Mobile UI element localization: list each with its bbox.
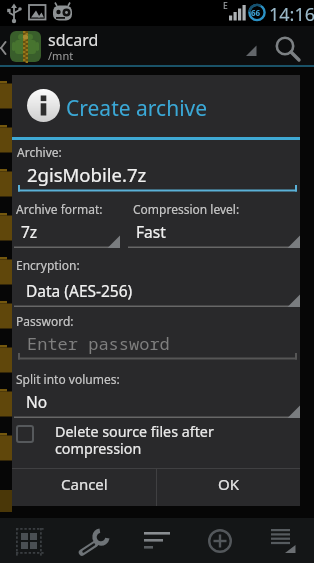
staticText: Encryption: <box>16 257 80 273</box>
button[interactable]: Delete source files after compression <box>16 422 292 458</box>
staticText: sdcard <box>48 29 99 51</box>
staticText: Create archive <box>66 94 208 119</box>
button[interactable] <box>126 518 189 563</box>
staticText: 66 <box>251 7 261 18</box>
staticText: No <box>26 391 48 412</box>
button[interactable]: Data (AES-256) <box>14 274 300 307</box>
button[interactable]: Fast <box>128 215 300 248</box>
button[interactable] <box>10 31 41 62</box>
button[interactable] <box>0 518 63 563</box>
staticText: 7z <box>21 221 38 242</box>
staticText: 14:16 <box>269 2 314 27</box>
staticText: /mnt <box>48 48 74 63</box>
button[interactable] <box>270 30 306 62</box>
staticText: Delete source files after compression <box>55 422 214 458</box>
button[interactable]: sdcard <box>48 29 99 66</box>
staticText: Data (AES-256) <box>26 280 133 301</box>
button[interactable] <box>16 153 296 193</box>
staticText: Archive: <box>17 144 62 160</box>
staticText: Archive format: <box>16 201 103 217</box>
staticText: Cancel <box>61 474 108 494</box>
button[interactable]: 7z <box>14 215 120 248</box>
staticText: 2gisMobile.7z <box>27 162 147 187</box>
staticText: Fast <box>136 221 166 242</box>
button[interactable] <box>16 325 296 363</box>
staticText: E <box>223 0 228 12</box>
staticText: Compression level: <box>133 201 240 217</box>
button[interactable] <box>188 518 251 563</box>
button[interactable]: Cancel <box>12 468 156 503</box>
button[interactable] <box>63 518 126 563</box>
staticText: Split into volumes: <box>16 371 120 387</box>
staticText: Password: <box>16 313 74 329</box>
staticText: OK <box>218 474 240 494</box>
button[interactable]: No <box>14 385 300 418</box>
staticText: Enter password <box>27 332 170 355</box>
button[interactable]: OK <box>157 468 300 503</box>
button[interactable] <box>251 518 314 563</box>
